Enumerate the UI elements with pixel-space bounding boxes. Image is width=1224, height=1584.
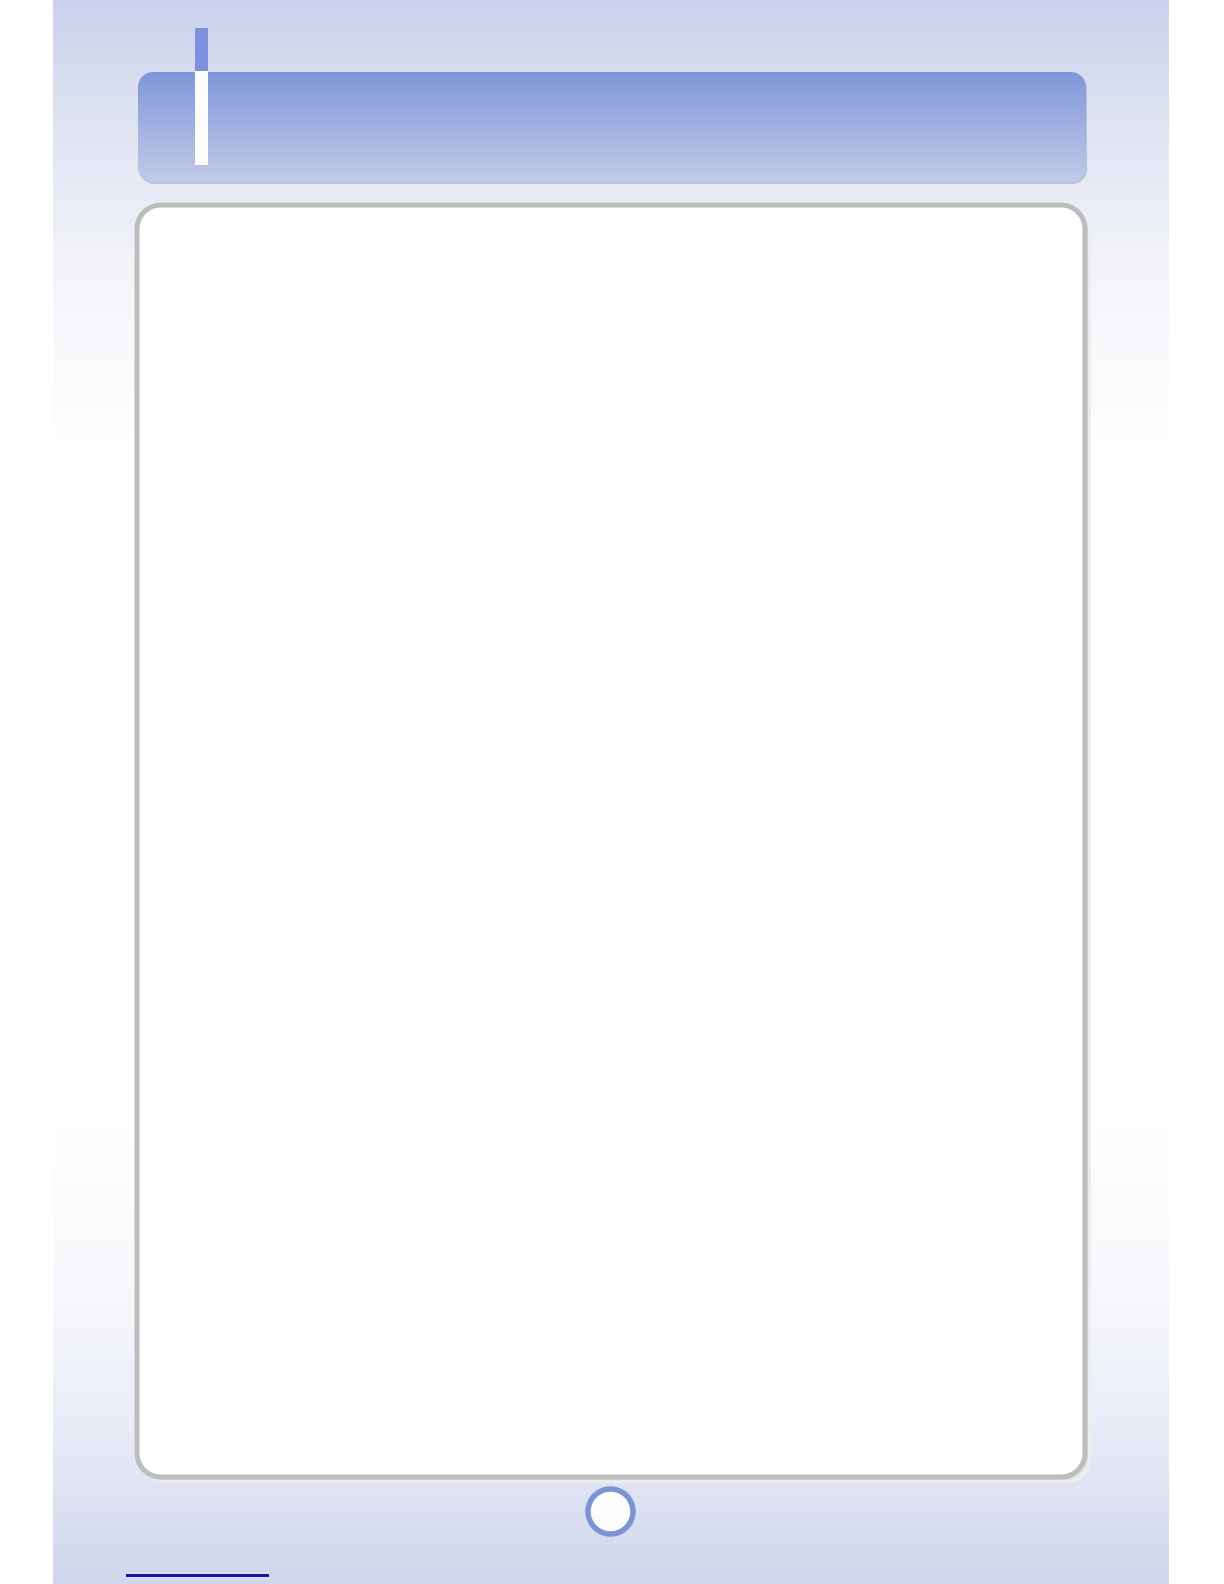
button[interactable]: Link bbox=[126, 1572, 269, 1579]
button[interactable]: Home bbox=[588, 1489, 633, 1534]
